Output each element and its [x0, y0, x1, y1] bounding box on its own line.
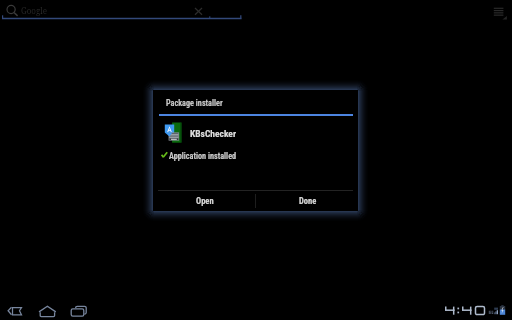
button[interactable]: Search [5, 3, 20, 18]
staticText: Package installer [166, 98, 223, 108]
button[interactable]: Home [37, 304, 58, 319]
staticText: KBsChecker [190, 128, 237, 139]
staticText: Application installed [169, 151, 237, 161]
other: Battery [499, 305, 507, 317]
button[interactable]: Done [259, 192, 356, 209]
other: Mobile signal [487, 303, 499, 317]
other: Clock 4:40 [444, 303, 490, 317]
staticText: Done [299, 196, 317, 206]
staticText: Google [21, 5, 48, 16]
button[interactable]: Open [156, 192, 253, 209]
staticText: Open [196, 196, 214, 206]
button[interactable]: Menu [492, 6, 509, 22]
button[interactable]: Back [4, 303, 26, 318]
button[interactable]: Clear search [194, 7, 203, 16]
button[interactable]: Recent apps [68, 303, 89, 318]
